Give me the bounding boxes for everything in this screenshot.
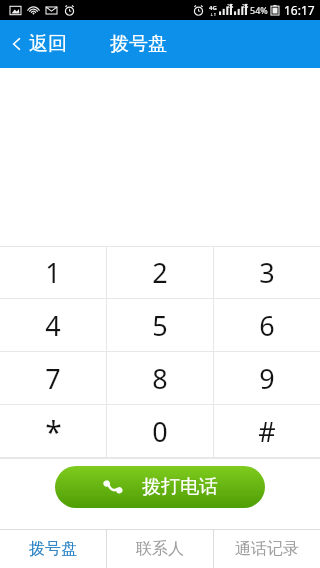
staticText: 3 — [259, 254, 275, 291]
button[interactable]: Back — [0, 26, 77, 62]
staticText: 0 — [152, 413, 168, 450]
button[interactable]: 5 — [107, 299, 213, 351]
button[interactable]: 7 — [0, 352, 106, 404]
staticText: 通话记录 — [235, 539, 299, 559]
button[interactable]: 拨打电话 — [55, 466, 265, 508]
button[interactable]: 0 — [107, 405, 213, 457]
staticText: 2G — [227, 3, 234, 10]
button[interactable]: 6 — [214, 299, 320, 351]
staticText: 联系人 — [136, 539, 184, 559]
button[interactable]: 9 — [214, 352, 320, 404]
staticText: 返回 — [29, 32, 67, 56]
button[interactable]: 拨号盘 — [0, 530, 106, 568]
staticText: 7 — [45, 360, 61, 397]
staticText: 54% — [250, 4, 268, 16]
button[interactable]: * — [0, 405, 106, 457]
staticText: 2G — [242, 3, 249, 10]
button[interactable]: 1 — [0, 247, 106, 298]
staticText: 6 — [259, 307, 275, 344]
staticText: 16:17 — [284, 2, 315, 18]
staticText: * — [45, 411, 62, 452]
other: Back — [10, 37, 24, 51]
button[interactable]: 3 — [214, 247, 320, 298]
staticText: 拨打电话 — [142, 475, 218, 499]
staticText: 9 — [259, 360, 275, 397]
button[interactable]: # — [214, 405, 320, 457]
staticText: 4G — [209, 4, 217, 12]
staticText: 4 — [45, 307, 61, 344]
button[interactable]: 通话记录 — [214, 530, 320, 568]
staticText: 8 — [152, 360, 168, 397]
staticText: ↓↑ — [210, 12, 217, 17]
staticText: 拨号盘 — [110, 32, 167, 56]
button[interactable]: 8 — [107, 352, 213, 404]
staticText: 拨号盘 — [29, 539, 77, 559]
button[interactable]: 4 — [0, 299, 106, 351]
staticText: 1 — [45, 254, 61, 291]
button[interactable]: 联系人 — [107, 530, 213, 568]
button[interactable]: 2 — [107, 247, 213, 298]
staticText: 2 — [152, 254, 168, 291]
staticText: 5 — [152, 307, 168, 344]
staticText: # — [258, 413, 276, 450]
